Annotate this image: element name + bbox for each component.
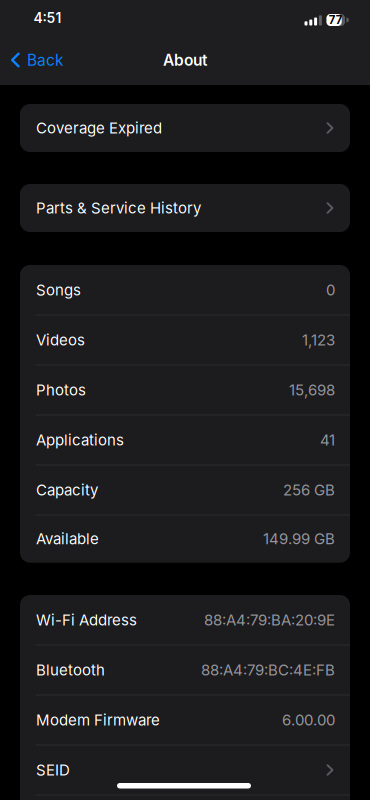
staticText: Parts & Service History	[36, 199, 201, 217]
staticText: Available	[36, 530, 99, 548]
staticText: Photos	[36, 381, 86, 399]
staticText: 256 GB	[283, 481, 335, 499]
button[interactable]: Parts & Service History	[20, 184, 350, 232]
staticText: 41	[320, 431, 335, 449]
staticText: Videos	[36, 331, 85, 349]
staticText: 149.99 GB	[263, 530, 335, 548]
staticText: SEID	[36, 761, 70, 779]
button[interactable]: Coverage Expired	[20, 104, 350, 152]
staticText: 0	[326, 281, 335, 299]
staticText: Back	[27, 51, 64, 69]
staticText: Capacity	[36, 481, 98, 499]
staticText: 6.00.00	[282, 711, 335, 729]
staticText: Wi-Fi Address	[36, 611, 137, 629]
staticText: About	[163, 51, 207, 69]
staticText: Applications	[36, 431, 124, 449]
button[interactable]: Back	[0, 40, 64, 80]
staticText: 15,698	[289, 381, 335, 399]
staticText: Modem Firmware	[36, 711, 160, 729]
staticText: 88:A4:79:BA:20:9E	[204, 611, 335, 629]
button[interactable]: SEID	[20, 745, 350, 795]
staticText: 88:A4:79:BC:4E:FB	[201, 661, 335, 679]
staticText: Bluetooth	[36, 661, 105, 679]
staticText: Coverage Expired	[36, 119, 162, 137]
staticText: 77	[329, 13, 343, 27]
staticText: 4:51	[33, 10, 61, 26]
staticText: 1,123	[302, 331, 335, 349]
staticText: Songs	[36, 281, 81, 299]
